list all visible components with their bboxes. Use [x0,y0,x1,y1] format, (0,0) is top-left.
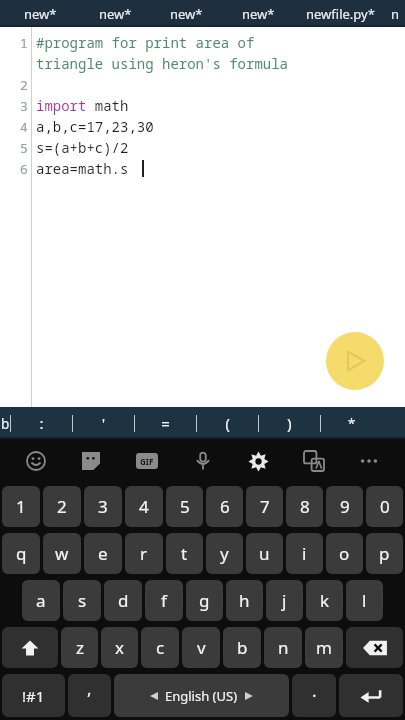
button[interactable]: 9 [326,486,363,527]
button[interactable]: j [266,580,303,621]
staticText: b [1,414,10,433]
staticText: 6 [20,160,28,178]
button[interactable]: Backspace [346,627,403,668]
button[interactable]: Settings [238,441,278,481]
button[interactable]: Stickers [71,441,111,481]
staticText: 3 [98,495,108,518]
button[interactable]: g [186,580,223,621]
button[interactable]: 2 [43,486,81,527]
button[interactable]: new* [0,0,80,27]
button[interactable]: newfile.py* [294,0,386,27]
button[interactable]: k [306,580,343,621]
staticText: ' [99,413,109,433]
button[interactable]: u [246,533,283,574]
button[interactable]: : [11,407,72,439]
staticText: d [118,589,129,612]
button[interactable]: w [43,533,81,574]
button[interactable]: new* [150,0,222,27]
button[interactable]: ( [197,407,258,439]
button[interactable]: z [61,627,98,668]
staticText: c [156,636,165,659]
button[interactable]: c [141,627,179,668]
button[interactable]: 1 [2,486,40,527]
button[interactable]: l [346,580,383,621]
staticText: 1 [20,34,28,52]
button[interactable]: . [292,674,336,717]
staticText: 5 [20,139,28,157]
staticText: ( [223,413,233,433]
staticText: l [362,589,367,612]
button[interactable]: = [135,407,196,439]
staticText: g [199,589,210,612]
button[interactable]: Voice input [183,441,223,481]
staticText: new* [99,5,132,23]
staticText: a [36,589,46,612]
staticText: 4 [20,118,28,136]
button[interactable]: 4 [125,486,163,527]
button[interactable]: Enter [339,674,403,717]
button[interactable]: b [0,407,10,439]
button[interactable]: 0 [366,486,403,527]
button[interactable]: 7 [246,486,283,527]
button[interactable]: e [84,533,122,574]
staticText: n [391,5,400,23]
staticText: !#1 [22,686,45,706]
staticText: area=math.s [36,159,129,178]
button[interactable]: b [223,627,261,668]
button[interactable]: n [386,0,405,27]
staticText: 6 [220,495,230,518]
button[interactable]: f [145,580,183,621]
button[interactable]: English (US) [114,674,289,717]
button[interactable]: a [22,580,60,621]
button[interactable]: Emoji [16,441,56,481]
staticText: 2 [20,76,28,94]
staticText: 0 [380,495,390,518]
staticText: 9 [340,495,350,518]
staticText: w [55,542,69,565]
staticText: q [16,542,27,565]
button[interactable]: n [264,627,302,668]
button[interactable]: m [305,627,343,668]
button[interactable]: 6 [206,486,243,527]
button[interactable]: o [326,533,363,574]
button[interactable]: * [321,407,382,439]
button[interactable]: p [366,533,403,574]
button[interactable]: !#1 [2,674,65,717]
staticText: 7 [260,495,270,518]
staticText: s=(a+b+c)/2 [36,138,129,157]
button[interactable]: d [104,580,142,621]
button[interactable]: More options [349,441,389,481]
button[interactable]: new* [222,0,294,27]
button[interactable]: , [68,674,111,717]
button[interactable]: 8 [286,486,323,527]
staticText: * [347,413,357,433]
staticText: . [312,679,317,702]
button[interactable]: i [286,533,323,574]
staticText: 4 [139,495,149,518]
button[interactable]: Shift [2,627,58,668]
button[interactable]: y [206,533,243,574]
button[interactable]: GIF [127,441,167,481]
button[interactable]: r [125,533,163,574]
button[interactable]: h [226,580,263,621]
button[interactable]: q [2,533,40,574]
staticText: : [37,413,47,433]
button[interactable]: 5 [166,486,203,527]
staticText: u [259,542,270,565]
staticText: f [161,589,167,612]
button[interactable]: x [101,627,138,668]
button[interactable]: v [182,627,220,668]
button[interactable]: new* [80,0,150,27]
staticText: e [98,542,108,565]
button[interactable]: t [166,533,203,574]
button[interactable]: ' [73,407,134,439]
staticText: t [181,542,188,565]
button[interactable]: Run [326,332,384,390]
button[interactable]: 3 [84,486,122,527]
staticText: 8 [300,495,310,518]
button[interactable]: Translate [294,441,334,481]
staticText: i [302,542,307,565]
staticText: j [282,589,287,612]
button[interactable]: ) [259,407,320,439]
button[interactable]: s [63,580,101,621]
